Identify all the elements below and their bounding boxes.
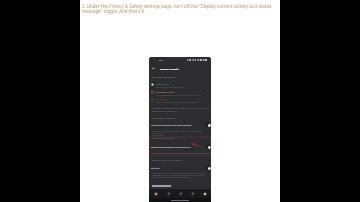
staticText: Allow direct messages from server member… — [151, 124, 201, 127]
button[interactable]: Everyone — [149, 166, 211, 170]
button[interactable]: Notifications — [175, 189, 187, 198]
staticText: WHO CAN ADD YOU AS A FRIEND — [152, 159, 182, 162]
staticText: ALLOW ACCESS TO — [152, 185, 169, 188]
button[interactable]: Allow direct messages from server member… — [149, 123, 211, 127]
staticText: SERVER PRIVACY DEFAULTS — [152, 110, 177, 113]
staticText: SAFE DIRECT MESSAGING — [152, 76, 175, 79]
button[interactable]: Friends — [187, 189, 199, 198]
button[interactable]: Servers — [149, 189, 162, 198]
staticText: This setting is applied when you join a … — [152, 130, 209, 136]
button[interactable]: Profile — [199, 189, 211, 198]
staticText: Everyone — [151, 167, 201, 170]
staticText: Direct messages will not be scanned for … — [156, 101, 198, 103]
staticText: Display current activity as a status mes… — [151, 146, 201, 149]
button[interactable]: Keep me safe — [149, 83, 211, 88]
staticText: Anyone can send you a friend request, in… — [152, 172, 209, 178]
button[interactable]: Back — [151, 66, 155, 70]
staticText: HOW WE USE YOUR DATA — [152, 137, 175, 140]
staticText: 2. Under the Privacy & Safety settings p… — [82, 3, 278, 14]
staticText: Keep me safe — [156, 83, 169, 86]
button[interactable]: My friends are nice — [149, 91, 211, 96]
staticText: 9:41 — [159, 59, 163, 62]
staticText: Scan direct messages from everyone. — [156, 86, 184, 88]
button[interactable]: Messages — [162, 189, 175, 198]
staticText: Do not scan — [156, 98, 168, 101]
button[interactable]: Do not scan — [149, 98, 211, 103]
staticText: Scan direct messages from everyone unles… — [156, 94, 202, 96]
staticText: My friends are nice — [156, 91, 175, 94]
staticText: Privacy & Safety — [160, 67, 179, 70]
button[interactable]: Display current activity as a status mes… — [149, 145, 211, 149]
staticText: ALLOW DIRECT MESSAGES — [152, 117, 176, 120]
